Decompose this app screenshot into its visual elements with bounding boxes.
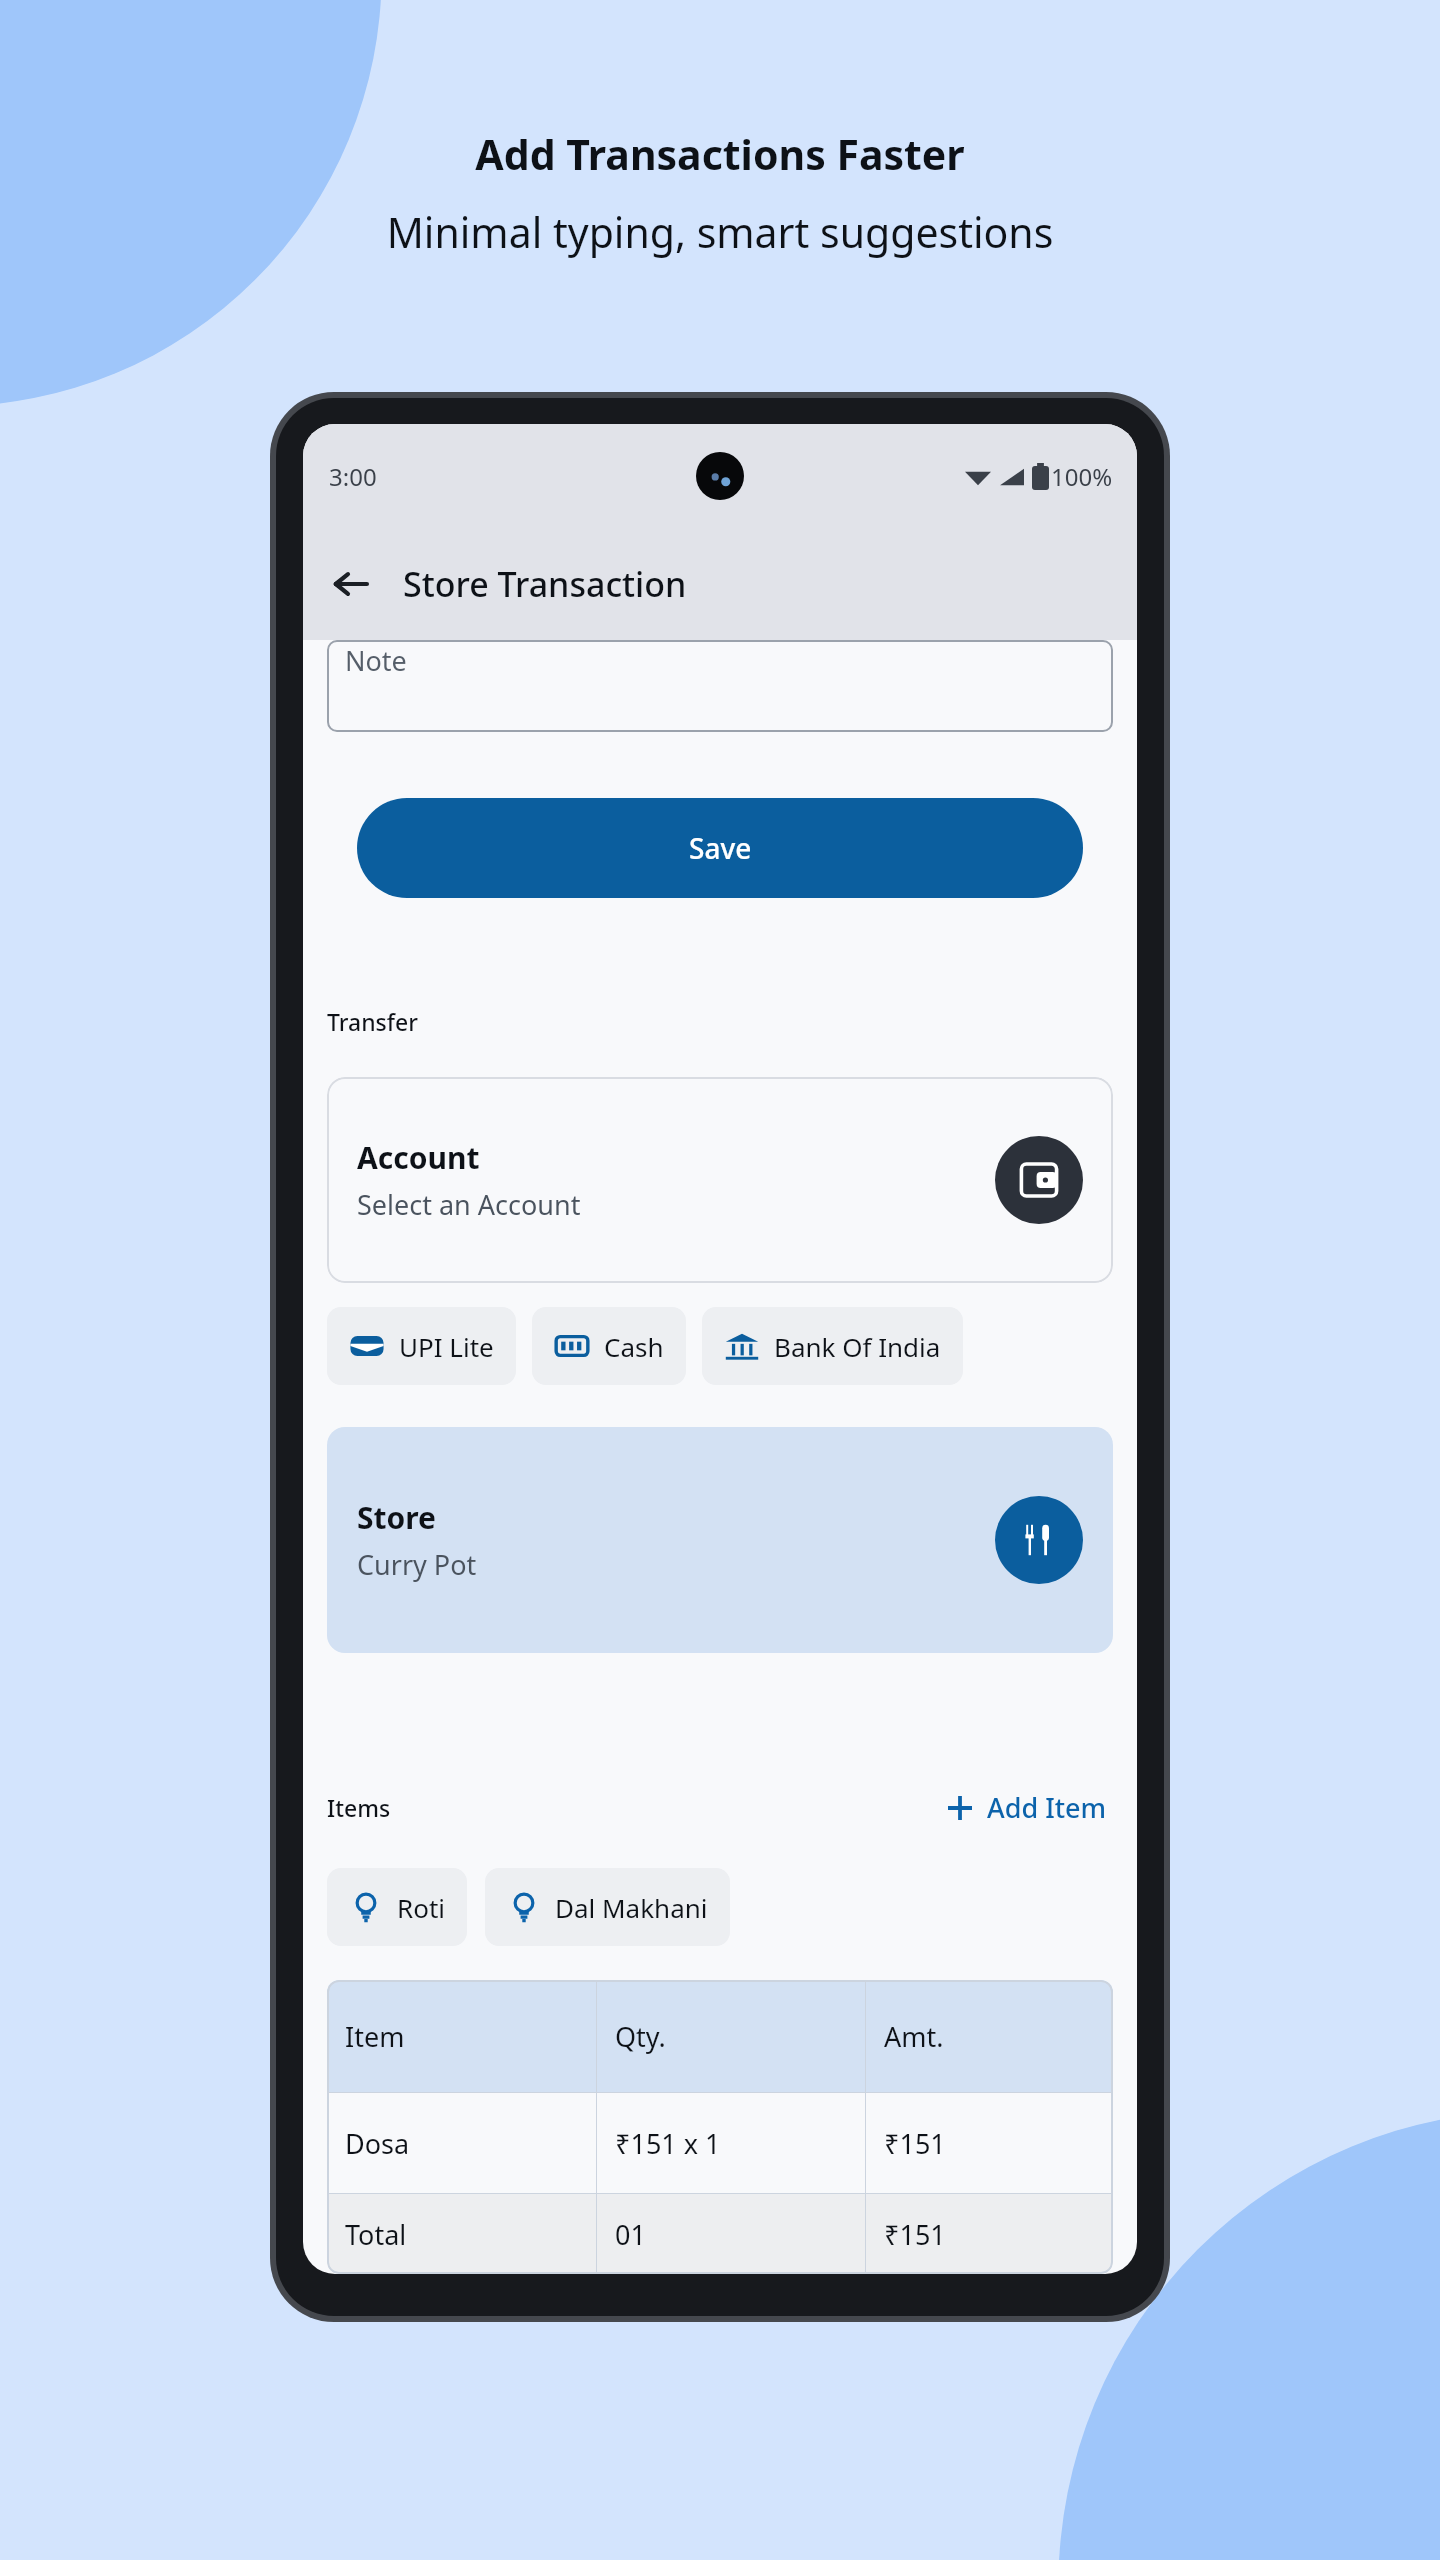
staticText: 3:00 bbox=[329, 460, 377, 493]
staticText: Select an Account bbox=[357, 1186, 581, 1223]
staticText: Add Item bbox=[987, 1789, 1107, 1826]
staticText: Transfer bbox=[327, 1006, 418, 1037]
staticText: Total bbox=[345, 2216, 407, 2253]
staticText: Note bbox=[345, 642, 407, 679]
staticText: Store bbox=[357, 1497, 437, 1538]
staticText: Amt. bbox=[884, 2018, 944, 2055]
staticText: Qty. bbox=[615, 2018, 666, 2055]
staticText: Cash bbox=[604, 1329, 664, 1364]
staticText: UPI Lite bbox=[399, 1329, 494, 1364]
staticText: Store Transaction bbox=[403, 561, 687, 607]
staticText: Items bbox=[327, 1792, 391, 1823]
button[interactable]: UPI Lite bbox=[327, 1307, 516, 1385]
staticText: Dal Makhani bbox=[555, 1890, 708, 1925]
staticText: Item bbox=[345, 2018, 405, 2055]
button[interactable]: Roti bbox=[327, 1868, 467, 1946]
button[interactable]: Cash bbox=[532, 1307, 686, 1385]
button[interactable]: Bank Of India bbox=[702, 1307, 963, 1385]
button[interactable]: Add Item bbox=[939, 1783, 1113, 1832]
staticText: ₹151 bbox=[884, 2216, 946, 2253]
staticText: Bank Of India bbox=[774, 1329, 941, 1364]
button[interactable]: Dal Makhani bbox=[485, 1868, 730, 1946]
button[interactable]: Store bbox=[327, 1427, 1113, 1653]
button[interactable]: Account bbox=[327, 1077, 1113, 1283]
staticText: Minimal typing, smart suggestions bbox=[0, 204, 1440, 260]
staticText: 100% bbox=[1051, 460, 1113, 493]
staticText: Save bbox=[689, 829, 752, 867]
staticText: Roti bbox=[397, 1890, 445, 1925]
staticText: ₹151 x 1 bbox=[615, 2125, 721, 2162]
button[interactable]: Save bbox=[357, 798, 1083, 898]
staticText: Account bbox=[357, 1137, 480, 1178]
staticText: Dosa bbox=[345, 2125, 410, 2162]
button[interactable]: Note bbox=[327, 640, 1113, 732]
staticText: Add Transactions Faster bbox=[0, 126, 1440, 182]
staticText: 01 bbox=[615, 2216, 646, 2253]
staticText: Curry Pot bbox=[357, 1546, 477, 1583]
staticText: ₹151 bbox=[884, 2125, 946, 2162]
button[interactable]: Back bbox=[315, 548, 387, 620]
